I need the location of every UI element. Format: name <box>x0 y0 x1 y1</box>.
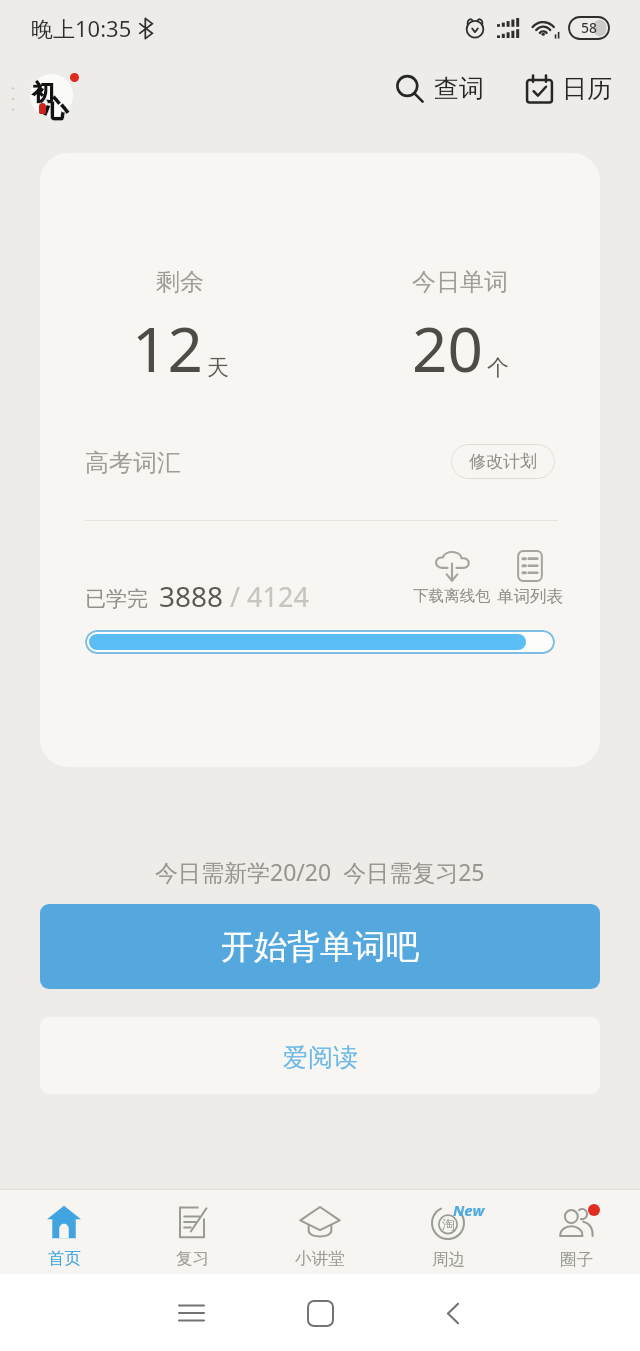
staticText: / 4124 <box>230 578 309 615</box>
button[interactable]: 小讲堂 <box>256 1190 384 1274</box>
button[interactable]: Recent apps <box>158 1280 224 1346</box>
staticText: 单词列表 <box>497 586 563 607</box>
staticText: 高考词汇 <box>85 448 181 478</box>
staticText: New <box>453 1200 485 1220</box>
staticText: 已学完 <box>85 586 148 612</box>
staticText: 初 <box>32 79 54 107</box>
button[interactable]: Home <box>287 1280 353 1346</box>
staticText: 天 <box>207 354 229 382</box>
staticText: 淘 <box>442 1216 455 1232</box>
staticText: 开始背单词吧 <box>221 926 419 968</box>
staticText: 查词 <box>434 73 484 104</box>
button[interactable]: 单词列表 <box>494 550 566 607</box>
staticText: 个 <box>487 354 509 382</box>
staticText: 剩余 <box>156 267 204 297</box>
staticText: 爱阅读 <box>283 1042 358 1073</box>
button[interactable]: 首页 <box>0 1190 128 1274</box>
staticText: 今日单词 <box>412 267 508 297</box>
staticText: 日历 <box>562 73 612 104</box>
button[interactable]: 查词 <box>391 63 488 114</box>
staticText: 晚上10:35 <box>31 13 132 43</box>
staticText: 复习 <box>176 1248 209 1269</box>
staticText: 今日需新学20/20 今日需复习25 <box>155 856 485 887</box>
staticText: 周边 <box>432 1249 465 1270</box>
staticText: 12 <box>132 306 203 390</box>
button[interactable]: 初心 app logo <box>28 70 88 130</box>
button[interactable]: 复习 <box>128 1190 256 1274</box>
staticText: 3888 <box>159 577 224 615</box>
staticText: 修改计划 <box>469 451 537 472</box>
staticText: 下载离线包 <box>413 586 491 606</box>
staticText: 小讲堂 <box>295 1248 345 1269</box>
button[interactable]: 日历 <box>522 63 616 114</box>
button[interactable]: 修改计划 <box>451 444 555 479</box>
staticText: 心 <box>44 94 68 124</box>
button[interactable]: Back <box>420 1280 486 1346</box>
button[interactable]: 淘 <box>384 1190 512 1274</box>
staticText: 圈子 <box>560 1249 593 1270</box>
button[interactable]: 开始背单词吧 <box>40 904 600 989</box>
button[interactable]: 圈子 <box>512 1190 640 1274</box>
staticText: 20 <box>412 306 483 390</box>
staticText: 58 <box>581 18 598 37</box>
staticText: 首页 <box>48 1248 81 1269</box>
button[interactable]: 下载离线包 <box>407 550 497 606</box>
button[interactable]: 爱阅读 <box>40 1017 600 1094</box>
